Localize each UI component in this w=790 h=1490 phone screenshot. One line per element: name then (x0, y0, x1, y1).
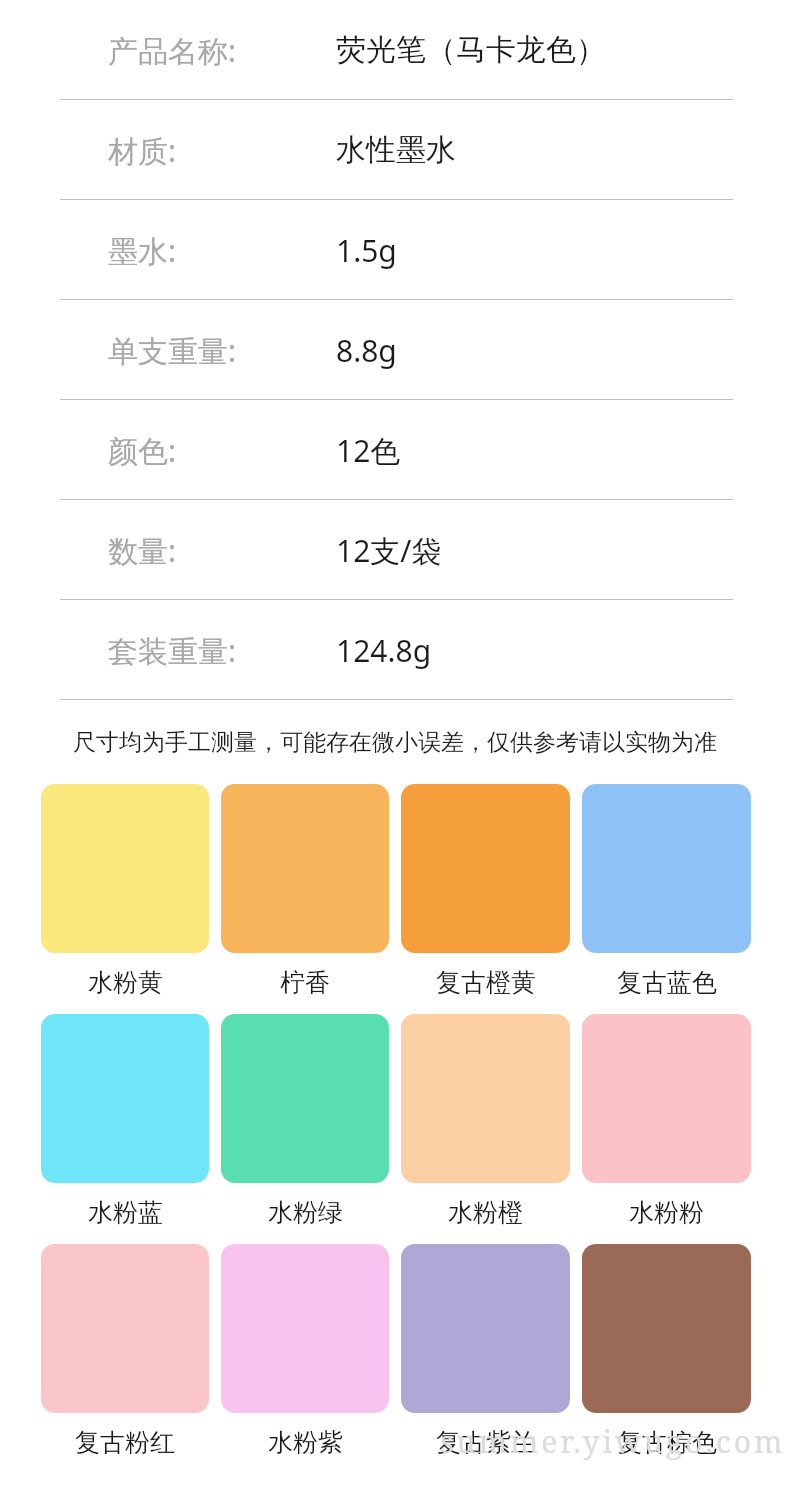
staticText: 水粉粉 (629, 1197, 704, 1228)
button[interactable]: 颜色: (0, 400, 790, 500)
button[interactable]: 水粉绿 (221, 1014, 389, 1228)
button[interactable]: 套装重量: (0, 600, 790, 700)
staticText: 数量: (108, 530, 177, 571)
other: 复古棕色 (582, 1244, 751, 1413)
staticText: 复古紫兰 (436, 1427, 536, 1458)
staticText: 水性墨水 (336, 131, 456, 169)
staticText: 颜色: (108, 430, 177, 471)
staticText: 柠香 (280, 967, 330, 998)
staticText: 12支/袋 (336, 530, 442, 571)
button[interactable]: 水粉橙 (401, 1014, 570, 1228)
button[interactable]: 数量: (0, 500, 790, 600)
staticText: 尺寸均为手工测量，可能存在微小误差，仅供参考请以实物为准 (73, 728, 717, 757)
staticText: 水粉紫 (268, 1427, 343, 1458)
staticText: 产品名称: (108, 30, 237, 71)
staticText: 复古粉红 (75, 1427, 175, 1458)
other: 水粉粉 (582, 1014, 751, 1183)
staticText: 单支重量: (108, 330, 237, 371)
staticText: 124.8g (336, 630, 432, 671)
other: 水粉绿 (221, 1014, 389, 1183)
staticText: 水粉蓝 (88, 1197, 163, 1228)
other: 复古橙黄 (401, 784, 570, 953)
other: 水粉黄 (41, 784, 209, 953)
button[interactable]: 复古橙黄 (401, 784, 570, 998)
button[interactable]: 水粉粉 (582, 1014, 751, 1228)
button[interactable]: 复古粉红 (41, 1244, 209, 1458)
staticText: 复古棕色 (617, 1427, 717, 1458)
button[interactable]: 材质: (0, 100, 790, 200)
button[interactable]: 复古紫兰 (401, 1244, 570, 1458)
staticText: 1.5g (336, 230, 397, 271)
staticText: 材质: (108, 130, 177, 171)
other: 复古粉红 (41, 1244, 209, 1413)
staticText: 复古蓝色 (617, 967, 717, 998)
button[interactable]: 水粉蓝 (41, 1014, 209, 1228)
button[interactable]: 复古棕色 (582, 1244, 751, 1458)
staticText: 8.8g (336, 330, 397, 371)
button[interactable]: 复古蓝色 (582, 784, 751, 998)
staticText: summer.yiwugo.com (440, 1421, 786, 1462)
button[interactable]: 水粉紫 (221, 1244, 389, 1458)
other: 柠香 (221, 784, 389, 953)
button[interactable]: 水粉黄 (41, 784, 209, 998)
other: 水粉紫 (221, 1244, 389, 1413)
staticText: 水粉橙 (448, 1197, 523, 1228)
staticText: 12色 (336, 430, 401, 471)
staticText: 荧光笔（马卡龙色） (336, 31, 606, 69)
staticText: 套装重量: (108, 630, 237, 671)
other: 水粉蓝 (41, 1014, 209, 1183)
button[interactable]: 产品名称: (0, 0, 790, 100)
staticText: 复古橙黄 (436, 967, 536, 998)
button[interactable]: 单支重量: (0, 300, 790, 400)
button[interactable]: 柠香 (221, 784, 389, 998)
staticText: 墨水: (108, 230, 177, 271)
other: 水粉橙 (401, 1014, 570, 1183)
button[interactable]: 墨水: (0, 200, 790, 300)
other: 复古蓝色 (582, 784, 751, 953)
staticText: 水粉黄 (88, 967, 163, 998)
staticText: 水粉绿 (268, 1197, 343, 1228)
other: 复古紫兰 (401, 1244, 570, 1413)
